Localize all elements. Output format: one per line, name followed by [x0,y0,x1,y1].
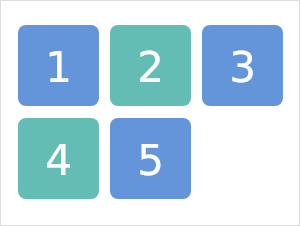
button[interactable]: 4 [18,118,99,199]
button[interactable]: 3 [202,25,283,106]
staticText: 4 [45,136,72,185]
staticText: 2 [137,43,164,92]
staticText: 5 [137,136,164,185]
button[interactable]: 5 [110,118,191,199]
button[interactable]: 1 [18,25,99,106]
button[interactable]: 2 [110,25,191,106]
staticText: 3 [229,43,256,92]
staticText: 1 [45,43,72,92]
